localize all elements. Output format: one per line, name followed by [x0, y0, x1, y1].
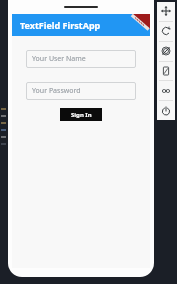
button[interactable]: Rotate screen	[158, 43, 174, 59]
staticText: Sign In	[71, 111, 92, 119]
button[interactable]: Pan	[158, 3, 174, 19]
staticText: Your User Name	[32, 54, 86, 64]
staticText: Your Password	[32, 86, 81, 96]
button[interactable]: Power	[158, 103, 174, 119]
button[interactable]: Rotate	[158, 23, 174, 39]
staticText: TextField FirstApp	[20, 19, 101, 31]
button[interactable]: Sign In	[60, 108, 102, 121]
button[interactable]: Link	[158, 83, 174, 99]
button[interactable]: Your User Name	[26, 50, 136, 68]
button[interactable]: Screenshot	[158, 63, 174, 79]
button[interactable]: Your Password	[26, 82, 136, 100]
